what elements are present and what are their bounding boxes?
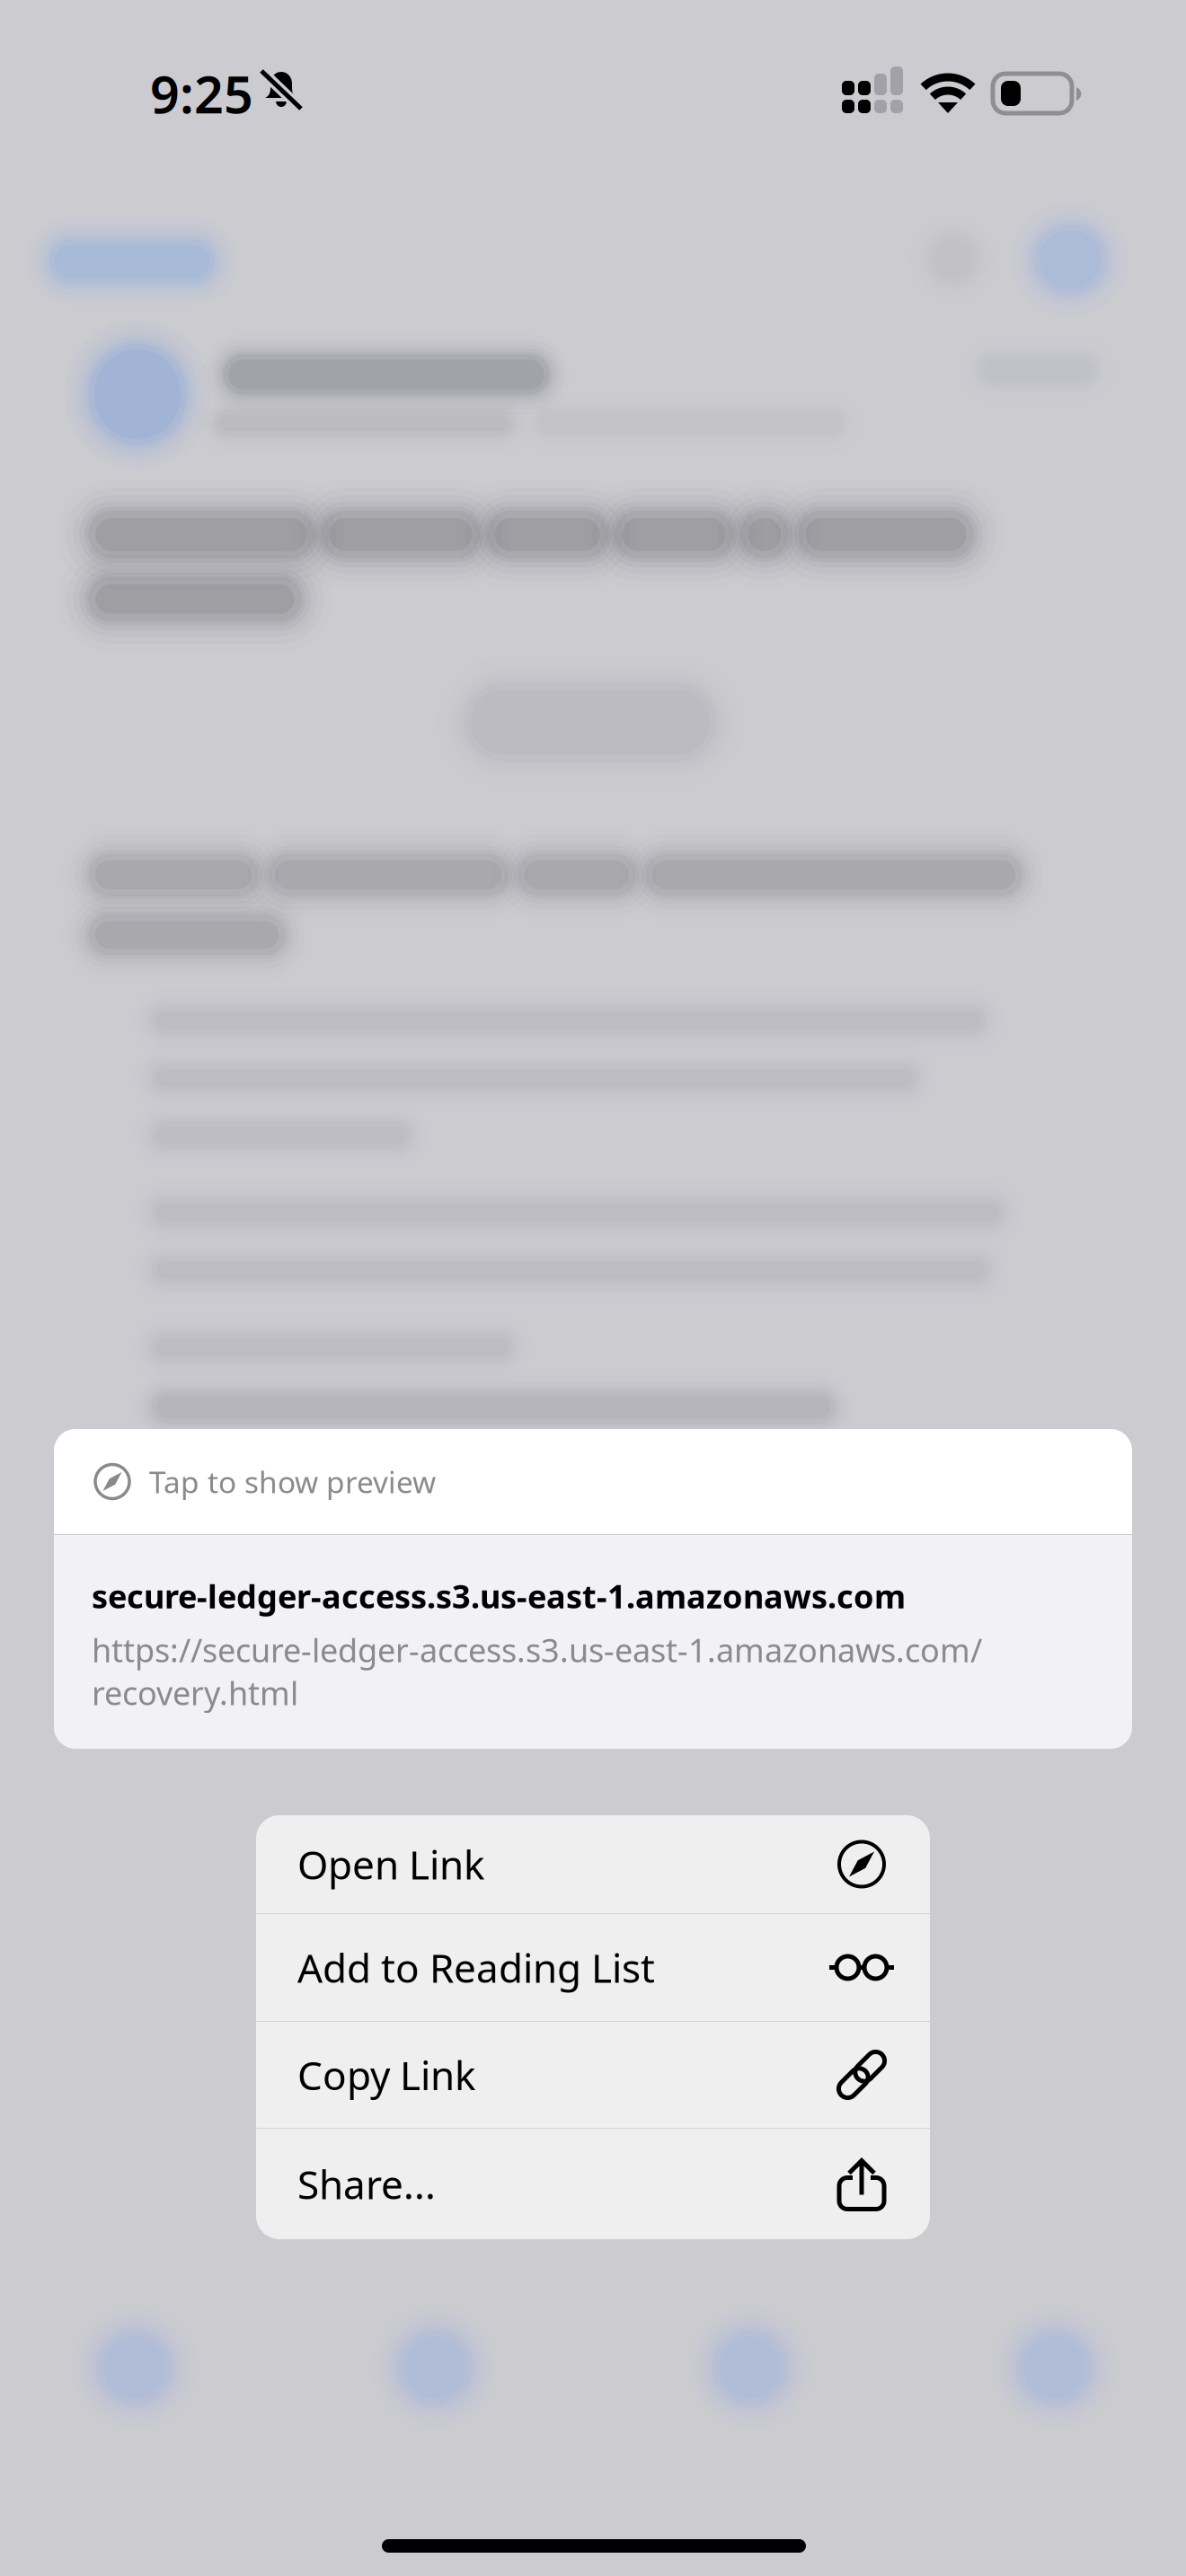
button[interactable]: Add to Reading List [256, 1914, 930, 2021]
staticText: 9:25 [150, 59, 253, 128]
staticText: Open Link [297, 1838, 484, 1890]
staticText: Add to Reading List [297, 1941, 655, 1994]
staticText: https://secure-ledger-access.s3.us-east-… [92, 1628, 982, 1714]
button[interactable]: Tap to show preview [54, 1429, 1132, 1749]
staticText: Share... [297, 2158, 436, 2210]
button[interactable]: Share... [256, 2129, 930, 2239]
button[interactable]: Open Link [256, 1815, 930, 1913]
staticText: Copy Link [297, 2049, 475, 2101]
staticText: secure-ledger-access.s3.us-east-1.amazon… [92, 1575, 906, 1617]
button[interactable]: Copy Link [256, 2022, 930, 2128]
staticText: Tap to show preview [149, 1462, 436, 1501]
